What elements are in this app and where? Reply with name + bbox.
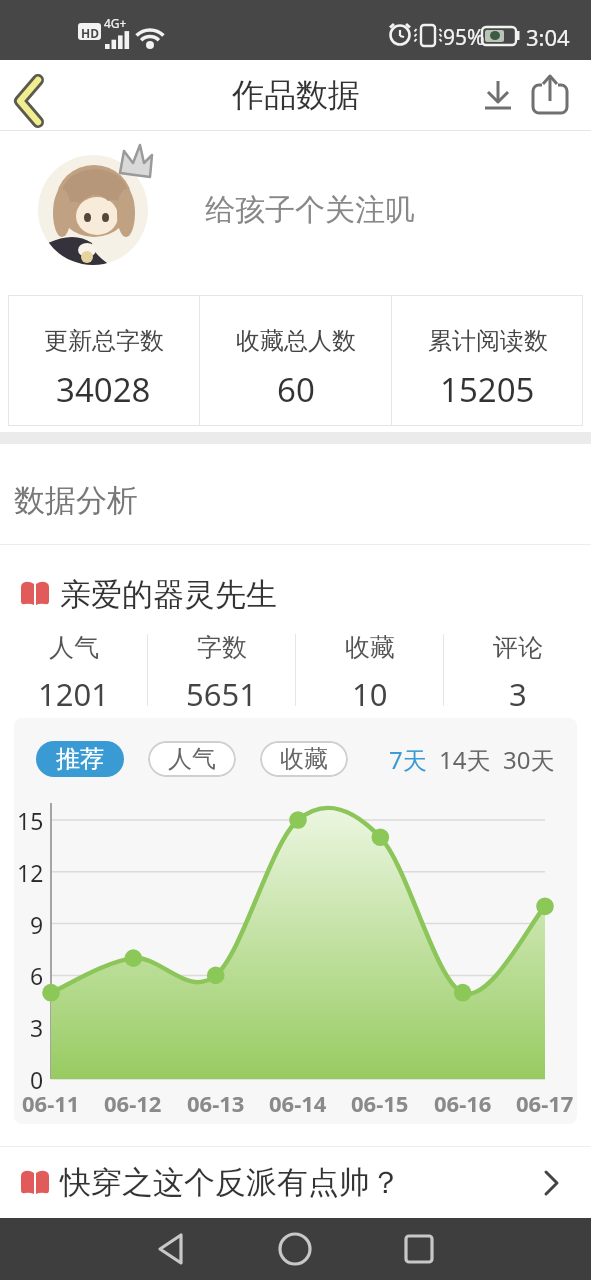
button[interactable]: 亲爱的器灵先生: [0, 566, 591, 622]
staticText: 推荐: [56, 744, 104, 774]
staticText: 06-12: [104, 1088, 162, 1118]
staticText: 字数: [197, 632, 247, 663]
button[interactable]: 人气: [148, 741, 236, 777]
staticText: 收藏: [280, 744, 328, 774]
staticText: 3: [30, 1012, 44, 1043]
button[interactable]: 30天: [503, 743, 555, 776]
staticText: 收藏总人数: [236, 326, 356, 356]
staticText: 0: [30, 1064, 44, 1095]
staticText: 5651: [186, 673, 257, 715]
button[interactable]: 7天: [389, 743, 427, 776]
button[interactable]: [528, 73, 572, 117]
staticText: 6: [30, 960, 44, 991]
staticText: 34028: [56, 367, 151, 412]
staticText: 06-14: [269, 1088, 327, 1118]
staticText: 快穿之这个反派有点帅？: [60, 1163, 401, 1202]
button[interactable]: 14天: [439, 743, 491, 776]
staticText: 06-17: [516, 1088, 574, 1118]
staticText: 15205: [440, 367, 535, 412]
button[interactable]: 收藏总人数: [200, 295, 391, 426]
button[interactable]: 累计阅读数: [392, 295, 583, 426]
staticText: 15: [17, 805, 44, 836]
button[interactable]: [0, 65, 60, 125]
staticText: 1201: [38, 673, 109, 715]
staticText: 06-16: [434, 1088, 492, 1118]
staticText: 累计阅读数: [428, 326, 548, 356]
staticText: 60: [277, 367, 315, 412]
staticText: 数据分析: [14, 481, 138, 520]
button[interactable]: 收藏: [260, 741, 348, 777]
staticText: 作品数据: [232, 75, 360, 115]
staticText: 4G+: [104, 15, 127, 31]
staticText: 12: [17, 857, 44, 888]
staticText: 收藏: [345, 632, 395, 663]
staticText: 06-11: [22, 1088, 80, 1118]
button[interactable]: 给孩子个关注叽: [0, 131, 591, 288]
staticText: 06-13: [187, 1088, 245, 1118]
button[interactable]: [271, 1225, 319, 1273]
button[interactable]: [395, 1225, 443, 1273]
staticText: 06-15: [351, 1088, 409, 1118]
staticText: 95%: [443, 23, 485, 52]
button[interactable]: 快穿之这个反派有点帅？: [0, 1147, 591, 1218]
staticText: 给孩子个关注叽: [205, 191, 415, 229]
button[interactable]: 更新总字数: [8, 295, 199, 426]
button[interactable]: [148, 1225, 196, 1273]
staticText: 更新总字数: [44, 326, 164, 356]
staticText: HD: [81, 25, 99, 41]
button[interactable]: [476, 73, 520, 117]
staticText: 3: [509, 673, 527, 715]
staticText: 人气: [168, 744, 216, 774]
staticText: 亲爱的器灵先生: [60, 575, 277, 614]
staticText: 9: [30, 909, 44, 940]
staticText: 10: [352, 673, 388, 715]
staticText: 评论: [493, 632, 543, 663]
staticText: 人气: [49, 632, 99, 663]
staticText: 3:04: [526, 22, 570, 52]
button[interactable]: 推荐: [36, 741, 124, 777]
